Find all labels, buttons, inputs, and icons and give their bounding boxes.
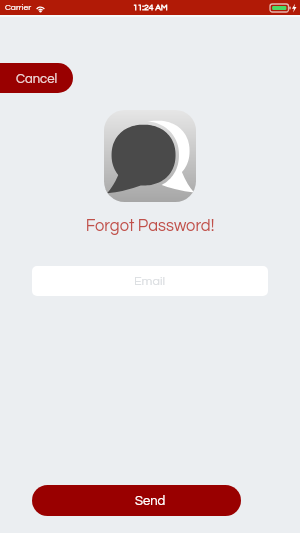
staticText: Email — [134, 275, 166, 288]
staticText: Send — [135, 494, 166, 507]
staticText: 11:24 AM — [133, 3, 168, 12]
staticText: Forgot Password! — [0, 217, 300, 234]
button[interactable]: Email — [32, 266, 268, 296]
staticText: Carrier — [5, 3, 32, 12]
button[interactable]: Cancel — [0, 63, 73, 93]
button[interactable] — [32, 485, 241, 516]
staticText: Cancel — [16, 72, 58, 85]
